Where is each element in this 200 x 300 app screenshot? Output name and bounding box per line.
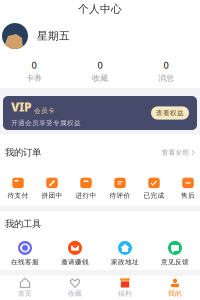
staticText: 我的工具 — [5, 218, 41, 230]
staticText: 意见反馈 — [161, 258, 189, 266]
button[interactable]: 家政地址 — [100, 237, 150, 270]
staticText: VIP — [11, 99, 32, 115]
staticText: 已完成 — [143, 191, 164, 200]
staticText: 售后 — [181, 191, 195, 200]
button[interactable]: 福利 — [100, 275, 150, 300]
staticText: 个人中心 — [78, 2, 122, 15]
button[interactable]: 收藏 — [50, 275, 100, 300]
staticText: 卡券 — [26, 73, 42, 83]
staticText: 查看全部 — [161, 148, 189, 157]
staticText: 0 — [31, 59, 36, 71]
staticText: 0 — [163, 59, 168, 71]
button[interactable]: 查看全部 — [161, 148, 195, 157]
button[interactable]: 首页 — [0, 275, 50, 300]
button[interactable]: 售后 — [171, 171, 200, 206]
button[interactable]: 0 — [1, 55, 67, 87]
staticText: 消息 — [158, 73, 174, 83]
staticText: 首页 — [18, 289, 32, 298]
button[interactable]: 待支付 — [1, 171, 35, 206]
staticText: 待支付 — [7, 191, 28, 200]
staticText: 查看权益 — [156, 109, 184, 117]
staticText: 拼团中 — [41, 191, 62, 200]
staticText: 我的 — [168, 289, 182, 298]
button[interactable]: 星期五 — [0, 18, 200, 54]
staticText: 在线客服 — [11, 258, 39, 266]
button[interactable]: 0 — [67, 55, 133, 87]
button[interactable]: 邀请赚钱 — [50, 237, 100, 270]
button[interactable]: 进行中 — [69, 171, 103, 206]
button[interactable]: 拼团中 — [35, 171, 69, 206]
staticText: 邀请赚钱 — [61, 258, 89, 266]
staticText: 星期五 — [37, 29, 70, 42]
staticText: 会员卡 — [34, 107, 55, 115]
button[interactable]: 待评价 — [103, 171, 137, 206]
staticText: 待评价 — [109, 191, 130, 200]
button[interactable]: 我的 — [150, 275, 200, 300]
staticText: 开通会员享受专属权益 — [11, 119, 81, 127]
staticText: 进行中 — [75, 191, 96, 200]
staticText: 我的订单 — [5, 147, 41, 158]
button[interactable]: 已完成 — [137, 171, 171, 206]
staticText: 家政地址 — [111, 258, 139, 266]
staticText: 收藏 — [92, 73, 108, 83]
button[interactable]: 在线客服 — [0, 237, 50, 270]
button[interactable]: VIP — [0, 96, 200, 130]
button[interactable]: 意见反馈 — [150, 237, 200, 270]
staticText: 收藏 — [68, 289, 82, 298]
button[interactable]: 0 — [133, 55, 199, 87]
staticText: 福利 — [118, 289, 132, 298]
staticText: 0 — [97, 59, 102, 71]
